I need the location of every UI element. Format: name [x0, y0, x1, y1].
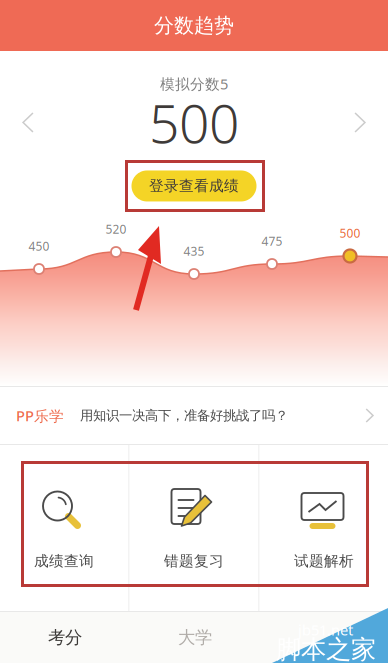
- staticText: 登录查看成绩: [149, 177, 239, 195]
- staticText: 500: [339, 225, 360, 241]
- staticText: 大学: [178, 627, 212, 648]
- staticText: 分数趋势: [154, 13, 234, 38]
- staticText: 450: [28, 238, 49, 254]
- button[interactable]: PP乐学: [0, 387, 388, 444]
- staticText: 错题复习: [164, 552, 224, 570]
- staticText: 试题解析: [294, 552, 354, 570]
- button[interactable]: 下一次成绩: [332, 94, 388, 150]
- button[interactable]: 大学: [130, 612, 260, 663]
- button[interactable]: 考分: [0, 612, 130, 663]
- button[interactable]: 上一次成绩: [0, 94, 56, 150]
- button[interactable]: 成绩查询: [0, 445, 128, 611]
- staticText: jb51.net: [298, 620, 353, 639]
- staticText: 脚本之家: [276, 634, 376, 663]
- staticText: 成绩查询: [34, 552, 94, 570]
- staticText: 435: [183, 243, 204, 259]
- button[interactable]: 登录查看成绩: [131, 170, 256, 201]
- staticText: 考分: [48, 627, 82, 648]
- button[interactable]: 试题解析: [259, 445, 388, 611]
- staticText: 475: [261, 233, 282, 249]
- staticText: PP乐学: [16, 406, 64, 425]
- staticText: 模拟分数5: [160, 74, 228, 93]
- staticText: 500: [149, 87, 239, 158]
- staticText: 520: [105, 221, 126, 237]
- staticText: 用知识一决高下，准备好挑战了吗？: [80, 407, 288, 424]
- button[interactable]: 错题复习: [129, 445, 258, 611]
